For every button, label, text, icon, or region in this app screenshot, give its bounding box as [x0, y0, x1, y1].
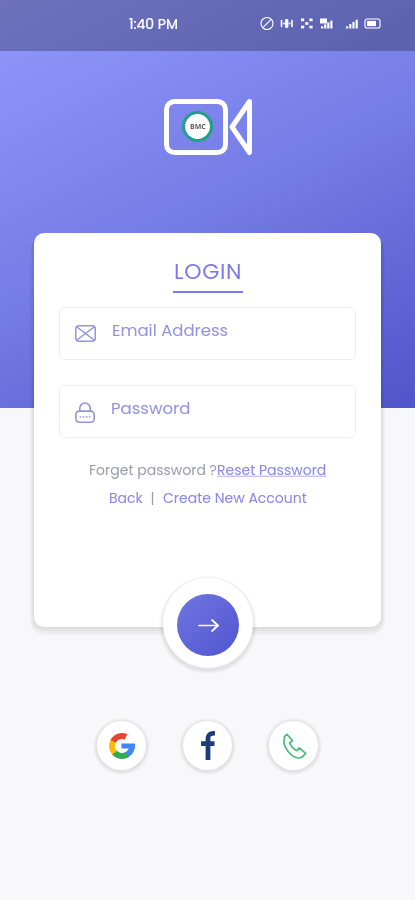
button[interactable]: Password	[59, 385, 356, 438]
button[interactable]: Back	[109, 488, 143, 508]
button[interactable]: Sign in with Google	[97, 721, 146, 770]
button[interactable]: Submit	[177, 594, 239, 656]
staticText: 1:40 PM	[129, 14, 178, 34]
staticText: Email Address	[112, 319, 229, 342]
button[interactable]: Reset Password	[217, 460, 327, 480]
button[interactable]: Create New Account	[163, 488, 307, 508]
staticText: Reset Password	[217, 460, 327, 480]
staticText: Create New Account	[163, 488, 307, 508]
button[interactable]: Sign in with Facebook	[183, 721, 232, 770]
staticText: |	[143, 488, 163, 508]
staticText: Forget password ?	[89, 460, 217, 480]
staticText: Back	[109, 488, 143, 508]
button[interactable]: Email Address	[59, 307, 356, 360]
staticText: BMC	[190, 122, 206, 132]
button[interactable]: Sign in with Phone	[269, 721, 318, 770]
staticText: LOGIN	[174, 256, 243, 287]
staticText: Password	[111, 397, 191, 420]
